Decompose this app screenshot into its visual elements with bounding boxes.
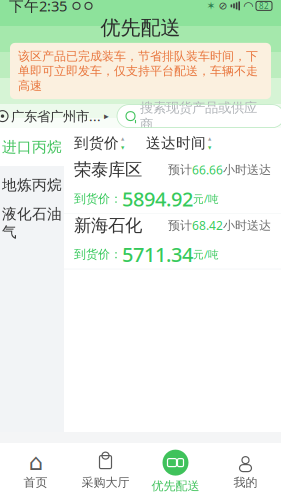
- staticText: 进口丙烷: [2, 138, 62, 156]
- button[interactable]: 采购大厅: [70, 443, 140, 500]
- staticText: 元/吨: [193, 192, 219, 206]
- staticText: 首页: [23, 475, 47, 490]
- button[interactable]: 新海石化: [64, 214, 281, 269]
- staticText: 荣泰库区: [74, 159, 142, 180]
- staticText: 液化石油气: [2, 205, 62, 241]
- staticText: 到货价：: [74, 191, 122, 206]
- button[interactable]: 送达时间: [146, 134, 211, 152]
- staticText: 到货价: [74, 134, 119, 152]
- staticText: ▾: [208, 144, 211, 151]
- button[interactable]: 广东省广州市...: [0, 107, 109, 125]
- button[interactable]: 我的: [210, 443, 280, 500]
- staticText: 搜索现货产品或供应商: [140, 100, 257, 132]
- staticText: 5711.34: [122, 241, 193, 268]
- staticText: ▸: [104, 111, 109, 121]
- button[interactable]: 搜索现货产品或供应商: [117, 105, 281, 128]
- staticText: ⊘: [219, 0, 228, 12]
- staticText: 元/吨: [193, 247, 219, 261]
- staticText: 68.42: [192, 217, 223, 233]
- staticText: 82: [259, 1, 269, 11]
- staticText: 优先配送: [100, 16, 180, 40]
- staticText: ▴: [121, 135, 124, 142]
- staticText: ⌂: [28, 449, 42, 475]
- staticText: 小时送达: [223, 162, 271, 177]
- button[interactable]: 进口丙烷: [0, 128, 64, 166]
- staticText: 下午2:35: [9, 0, 67, 16]
- button[interactable]: 优先配送: [140, 443, 210, 500]
- staticText: ◠: [243, 0, 253, 13]
- staticText: 小时送达: [223, 218, 271, 233]
- staticText: 优先配送: [151, 479, 199, 493]
- staticText: 新海石化: [74, 215, 142, 236]
- button[interactable]: 荣泰库区: [64, 158, 281, 213]
- staticText: ▴: [208, 135, 211, 142]
- staticText: 到货价：: [74, 247, 122, 262]
- staticText: 送达时间: [146, 134, 206, 152]
- button[interactable]: 液化石油气: [0, 204, 64, 242]
- staticText: 我的: [233, 475, 257, 490]
- staticText: 66.66: [192, 162, 223, 178]
- button[interactable]: 到货价: [74, 134, 124, 152]
- button[interactable]: ⌂: [0, 443, 70, 500]
- staticText: 该区产品已完成装车，节省排队装车时间，下单即可立即发车，仅支持平台配送，车辆不走…: [18, 49, 258, 93]
- staticText: ✶: [207, 0, 216, 12]
- staticText: 广东省广州市...: [11, 107, 101, 125]
- staticText: 地炼丙烷: [2, 176, 62, 194]
- staticText: 预计: [168, 162, 192, 177]
- button[interactable]: 地炼丙烷: [0, 166, 64, 204]
- staticText: 预计: [168, 218, 192, 233]
- staticText: 采购大厅: [81, 475, 129, 490]
- staticText: ▾: [121, 144, 124, 151]
- staticText: 5894.92: [122, 185, 193, 212]
